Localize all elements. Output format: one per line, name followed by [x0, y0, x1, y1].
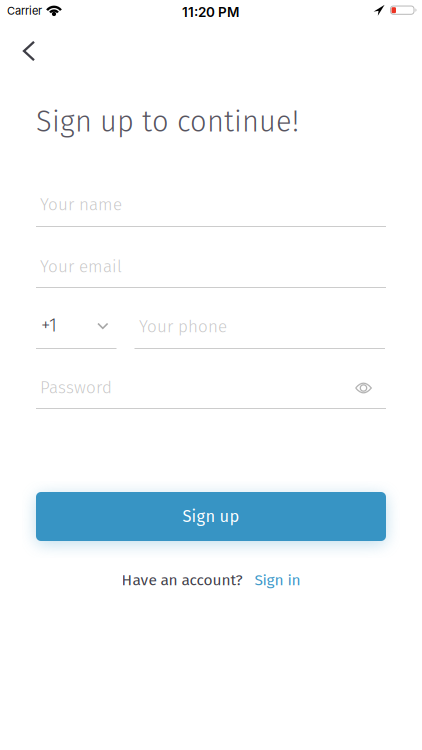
- staticText: Your phone: [139, 316, 227, 337]
- staticText: Your name: [40, 194, 122, 215]
- button[interactable]: Password: [36, 377, 386, 409]
- staticText: Have an account?: [121, 571, 242, 589]
- button[interactable]: Back: [12, 30, 46, 72]
- staticText: 11:20 PM: [182, 4, 239, 20]
- button[interactable]: Your email: [36, 256, 386, 288]
- staticText: Sign up to continue!: [36, 104, 299, 139]
- staticText: Carrier: [7, 4, 42, 17]
- button[interactable]: Country code +1: [36, 313, 116, 349]
- staticText: Sign in: [254, 571, 300, 589]
- staticText: Password: [40, 377, 112, 398]
- button[interactable]: Your phone: [134, 316, 385, 349]
- button[interactable]: Sign in: [121, 571, 300, 589]
- staticText: Sign up: [182, 507, 239, 526]
- button[interactable]: Sign up: [36, 492, 386, 541]
- button[interactable]: Your name: [36, 194, 386, 227]
- button[interactable]: Show password: [348, 375, 379, 401]
- staticText: +1: [41, 314, 57, 337]
- staticText: Your email: [40, 256, 122, 277]
